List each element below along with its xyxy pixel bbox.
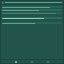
button[interactable]: List item	[2, 9, 62, 11]
button[interactable]: List item	[2, 6, 62, 8]
button[interactable]: List item	[2, 12, 62, 14]
button[interactable]: App title bar	[1, 1, 63, 4]
button[interactable]: List item	[2, 22, 62, 24]
button[interactable]: Selected item	[2, 17, 62, 19]
